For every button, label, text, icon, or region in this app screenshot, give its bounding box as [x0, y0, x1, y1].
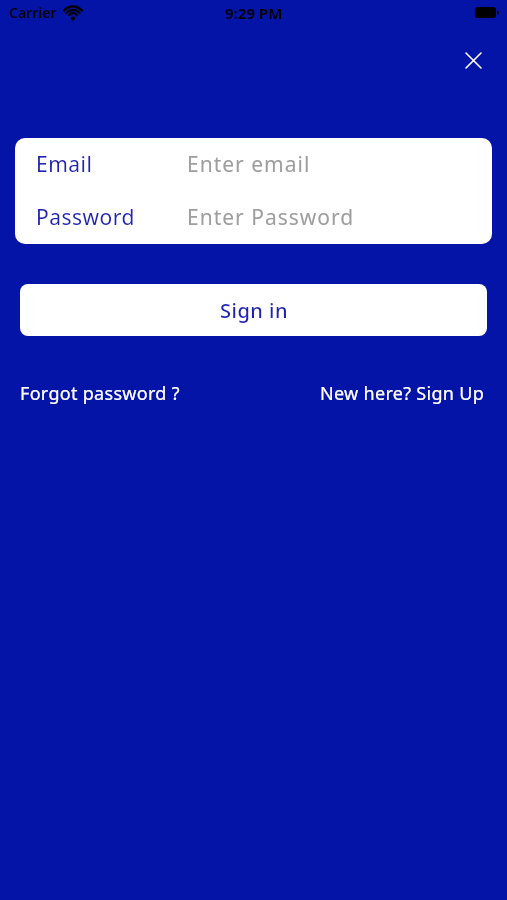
button[interactable]: Forgot password ?: [20, 381, 180, 406]
staticText: Email: [36, 150, 93, 179]
staticText: 9:29 PM: [225, 3, 283, 23]
button[interactable]: Email: [36, 138, 492, 191]
button[interactable]: [455, 42, 491, 78]
staticText: Enter Password: [187, 203, 355, 232]
staticText: New here? Sign Up: [320, 381, 485, 406]
staticText: Password: [36, 203, 135, 232]
staticText: Sign in: [220, 297, 288, 324]
staticText: Carrier: [9, 3, 57, 22]
button[interactable]: Password: [36, 191, 492, 244]
button[interactable]: Sign in: [20, 284, 487, 336]
button[interactable]: New here? Sign Up: [320, 381, 485, 406]
staticText: Forgot password ?: [20, 381, 180, 406]
staticText: Enter email: [187, 150, 311, 179]
